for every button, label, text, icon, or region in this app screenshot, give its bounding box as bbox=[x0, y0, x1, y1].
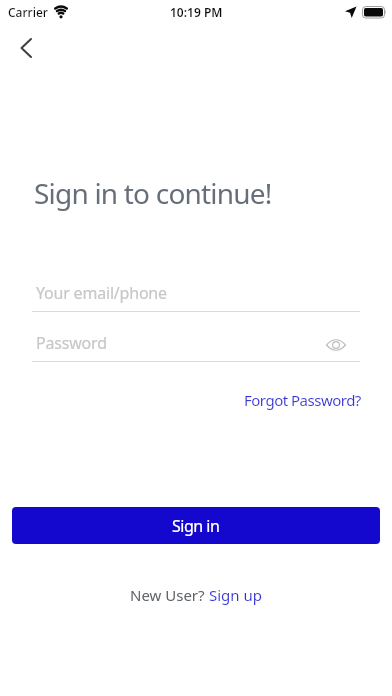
staticText: New User? bbox=[130, 585, 209, 605]
staticText: Forgot Password? bbox=[244, 390, 361, 410]
staticText: Sign in to continue! bbox=[34, 174, 272, 212]
staticText: Your email/phone bbox=[36, 282, 167, 304]
button[interactable] bbox=[10, 32, 42, 64]
button[interactable]: Sign up bbox=[209, 585, 262, 605]
staticText: Password bbox=[36, 332, 107, 354]
staticText: Sign up bbox=[209, 585, 262, 605]
button[interactable]: Your email/phone bbox=[32, 278, 360, 312]
button[interactable]: Sign in bbox=[12, 507, 380, 544]
button[interactable]: Forgot Password? bbox=[240, 386, 365, 414]
button[interactable] bbox=[324, 333, 348, 357]
staticText: Sign in bbox=[172, 515, 220, 537]
staticText: Carrier bbox=[8, 4, 48, 20]
button[interactable]: Password bbox=[32, 328, 360, 362]
staticText: 10:19 PM bbox=[170, 4, 223, 20]
